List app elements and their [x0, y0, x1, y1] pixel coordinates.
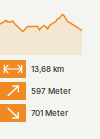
button[interactable]: 597 Meter [0, 82, 100, 100]
button[interactable]: 13,68 km [0, 60, 100, 78]
staticText: 701 Meter [31, 108, 68, 118]
staticText: 13,68 km [31, 64, 64, 74]
button[interactable]: 701 Meter [0, 104, 100, 122]
staticText: 597 Meter [31, 86, 71, 96]
